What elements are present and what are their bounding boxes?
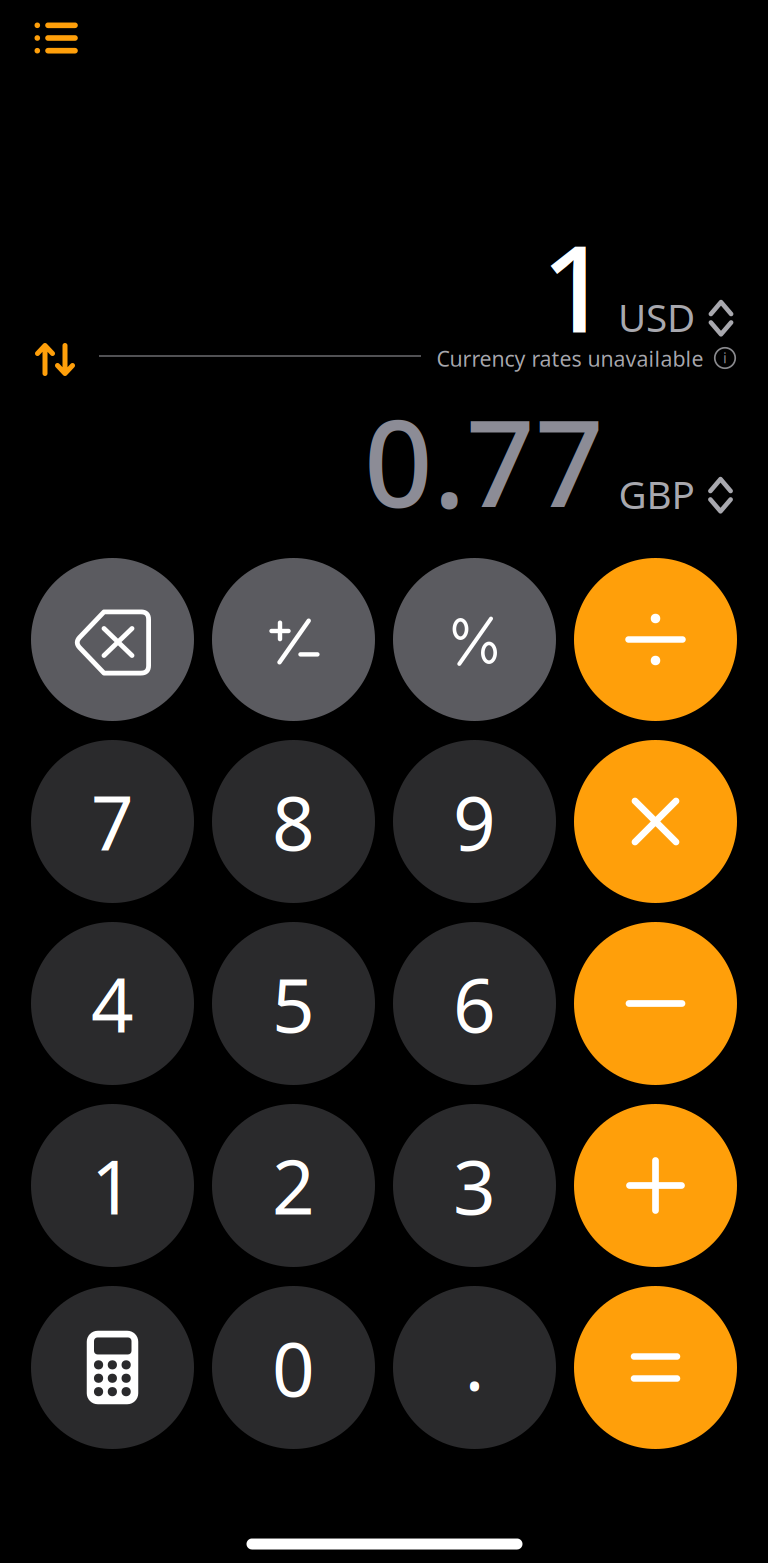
staticText: Currency rates unavailable: [436, 344, 703, 373]
staticText: GBP: [618, 468, 694, 520]
button[interactable]: Equals: [574, 1286, 737, 1449]
button[interactable]: 5: [212, 922, 375, 1085]
button[interactable]: Plus: [574, 1104, 737, 1267]
button[interactable]: 8: [212, 740, 375, 903]
button[interactable]: 1: [31, 1104, 194, 1267]
button[interactable]: Delete: [31, 558, 194, 721]
staticText: 0.77: [364, 381, 604, 541]
staticText: 1: [541, 206, 610, 366]
button[interactable]: 9: [393, 740, 556, 903]
button[interactable]: History: [14, 2, 97, 74]
button[interactable]: 3: [393, 1104, 556, 1267]
button[interactable]: Toggle sign: [212, 558, 375, 721]
button[interactable]: Divide: [574, 558, 737, 721]
staticText: 1: [91, 1136, 134, 1235]
staticText: 7: [91, 772, 134, 871]
staticText: 4: [91, 954, 134, 1053]
button[interactable]: From currency: USD: [614, 285, 738, 349]
button[interactable]: Percent: [393, 558, 556, 721]
staticText: 3: [453, 1136, 496, 1235]
staticText: .: [464, 1312, 484, 1411]
button[interactable]: 6: [393, 922, 556, 1085]
staticText: 2: [272, 1136, 315, 1235]
button[interactable]: Swap currencies: [18, 326, 91, 392]
button[interactable]: Calculator: [31, 1286, 194, 1449]
button[interactable]: 2: [212, 1104, 375, 1267]
staticText: 5: [272, 954, 315, 1053]
staticText: 0: [272, 1318, 315, 1417]
button[interactable]: 4: [31, 922, 194, 1085]
staticText: i: [723, 348, 727, 367]
button[interactable]: To currency: GBP: [614, 462, 737, 526]
button[interactable]: 0: [212, 1286, 375, 1449]
staticText: 6: [453, 954, 496, 1053]
staticText: 9: [453, 772, 496, 871]
staticText: 8: [272, 772, 315, 871]
button[interactable]: Multiply: [574, 740, 737, 903]
button[interactable]: 7: [31, 740, 194, 903]
staticText: USD: [618, 291, 695, 343]
button[interactable]: Rates info: [706, 339, 743, 376]
button[interactable]: Minus: [574, 922, 737, 1085]
button[interactable]: .: [393, 1286, 556, 1449]
